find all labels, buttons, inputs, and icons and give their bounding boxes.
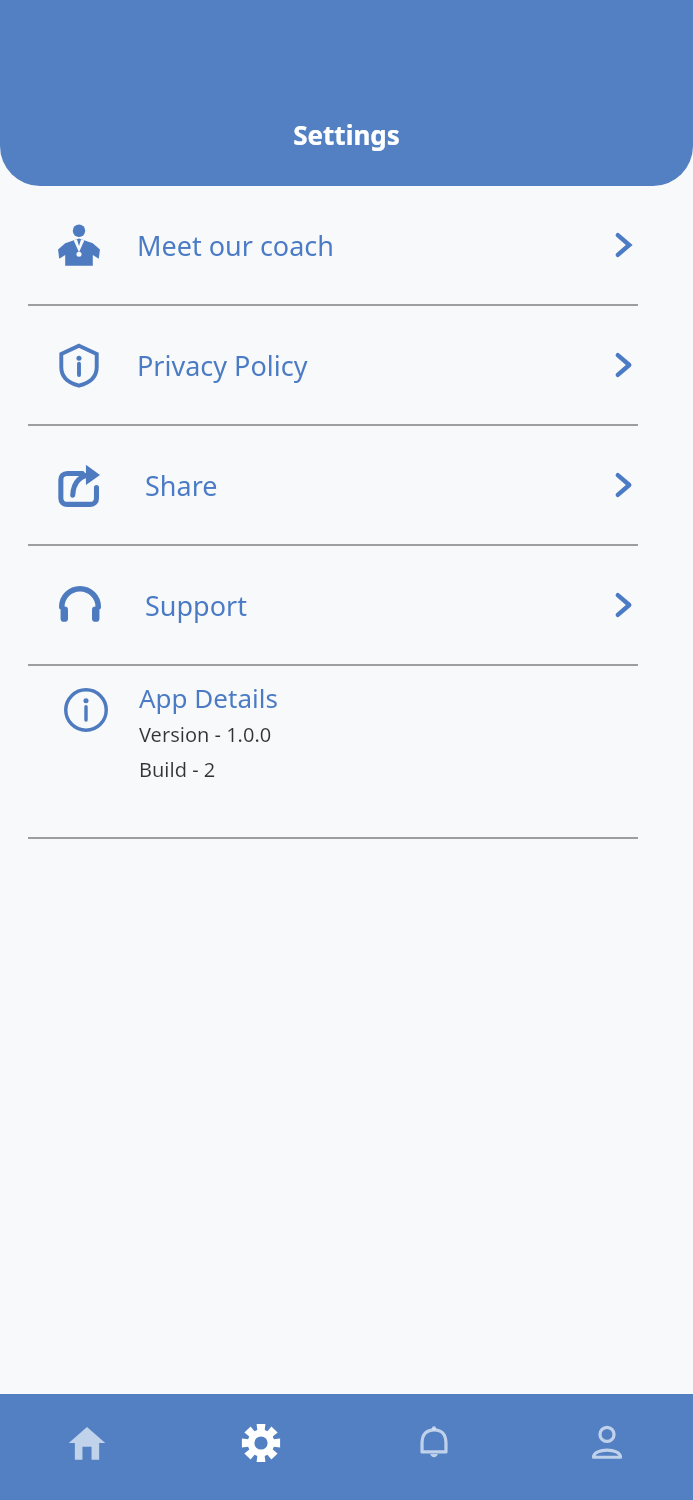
- button[interactable]: Notifications: [347, 1394, 520, 1500]
- staticText: Share: [145, 467, 218, 504]
- staticText: App Details: [139, 680, 278, 715]
- button[interactable]: Meet our coach: [0, 186, 693, 304]
- staticText: Settings: [293, 117, 400, 152]
- staticText: Version - 1.0.0: [139, 721, 272, 748]
- staticText: Meet our coach: [137, 227, 334, 264]
- staticText: Build - 2: [139, 756, 216, 783]
- button[interactable]: Privacy Policy: [0, 306, 693, 424]
- button[interactable]: Share: [0, 426, 693, 544]
- staticText: Support: [145, 587, 247, 624]
- button[interactable]: Settings: [174, 1394, 347, 1500]
- button[interactable]: Profile: [520, 1394, 693, 1500]
- button[interactable]: Support: [0, 546, 693, 664]
- button[interactable]: App Details: [0, 666, 693, 837]
- button[interactable]: Home: [0, 1394, 174, 1500]
- staticText: Privacy Policy: [137, 347, 308, 384]
